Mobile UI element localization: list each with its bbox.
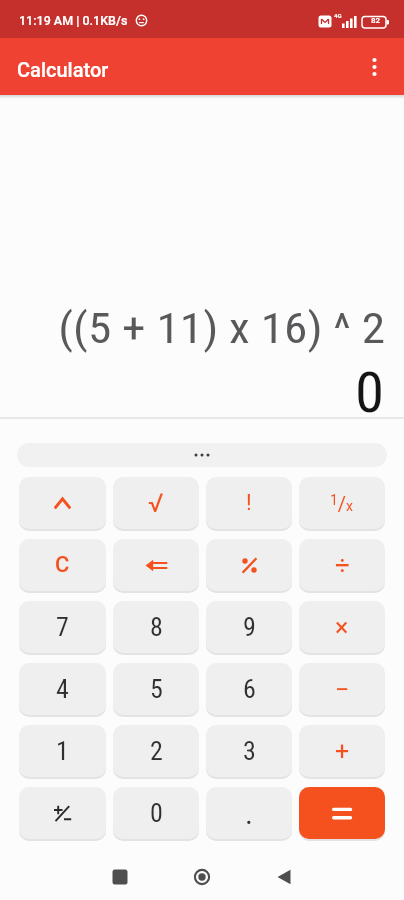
staticText: . [245,796,253,831]
button[interactable]: 4 [19,663,106,715]
button[interactable]: 2 [113,725,199,777]
button[interactable]: C [19,539,106,591]
button[interactable]: 9 [206,601,292,653]
staticText: 4G [334,12,342,19]
staticText: 9 [243,612,256,642]
staticText: 0 [150,798,163,828]
staticText: 82 [371,16,381,25]
staticText: 0 [355,361,385,417]
staticText: − [335,675,350,704]
button[interactable]: 0 [113,787,199,839]
staticText: Calculator [17,58,109,81]
button[interactable]: ! [206,477,292,529]
button[interactable] [113,539,199,591]
button[interactable]: 7 [19,601,106,653]
button[interactable]: 6 [206,663,292,715]
button[interactable] [79,861,161,893]
button[interactable] [299,787,385,839]
button[interactable] [17,443,387,467]
button[interactable] [19,787,106,839]
button[interactable]: . [206,787,292,839]
staticText: 11:19 AM | 0.1KB/s [19,13,128,28]
staticText: 6 [243,674,256,704]
button[interactable]: 8 [113,601,199,653]
button[interactable] [354,47,394,87]
staticText: 1/x [330,492,354,515]
button[interactable]: ÷ [299,539,385,591]
staticText: √ [148,488,164,518]
button[interactable] [206,539,292,591]
staticText: ÷ [335,550,350,580]
button[interactable]: − [299,663,385,715]
staticText: 2 [150,736,163,766]
staticText: 5 [150,674,163,704]
staticText: ! [246,490,252,516]
staticText: 1 [56,736,69,766]
staticText: ((5 + 11) x 16) ^ 2 [58,303,386,353]
button[interactable]: √ [113,477,199,529]
staticText: 3 [243,736,256,766]
staticText: × [335,613,349,642]
button[interactable] [243,861,325,893]
button[interactable]: 3 [206,725,292,777]
button[interactable] [161,861,243,893]
button[interactable]: + [299,725,385,777]
button[interactable]: × [299,601,385,653]
button[interactable] [19,477,106,529]
staticText: 8 [150,612,163,642]
button[interactable]: 1 [19,725,106,777]
button[interactable]: 5 [113,663,199,715]
staticText: C [55,552,70,578]
staticText: + [335,737,350,766]
staticText: 4 [56,674,69,704]
staticText: 7 [56,612,69,642]
button[interactable]: 1/x [299,477,385,529]
